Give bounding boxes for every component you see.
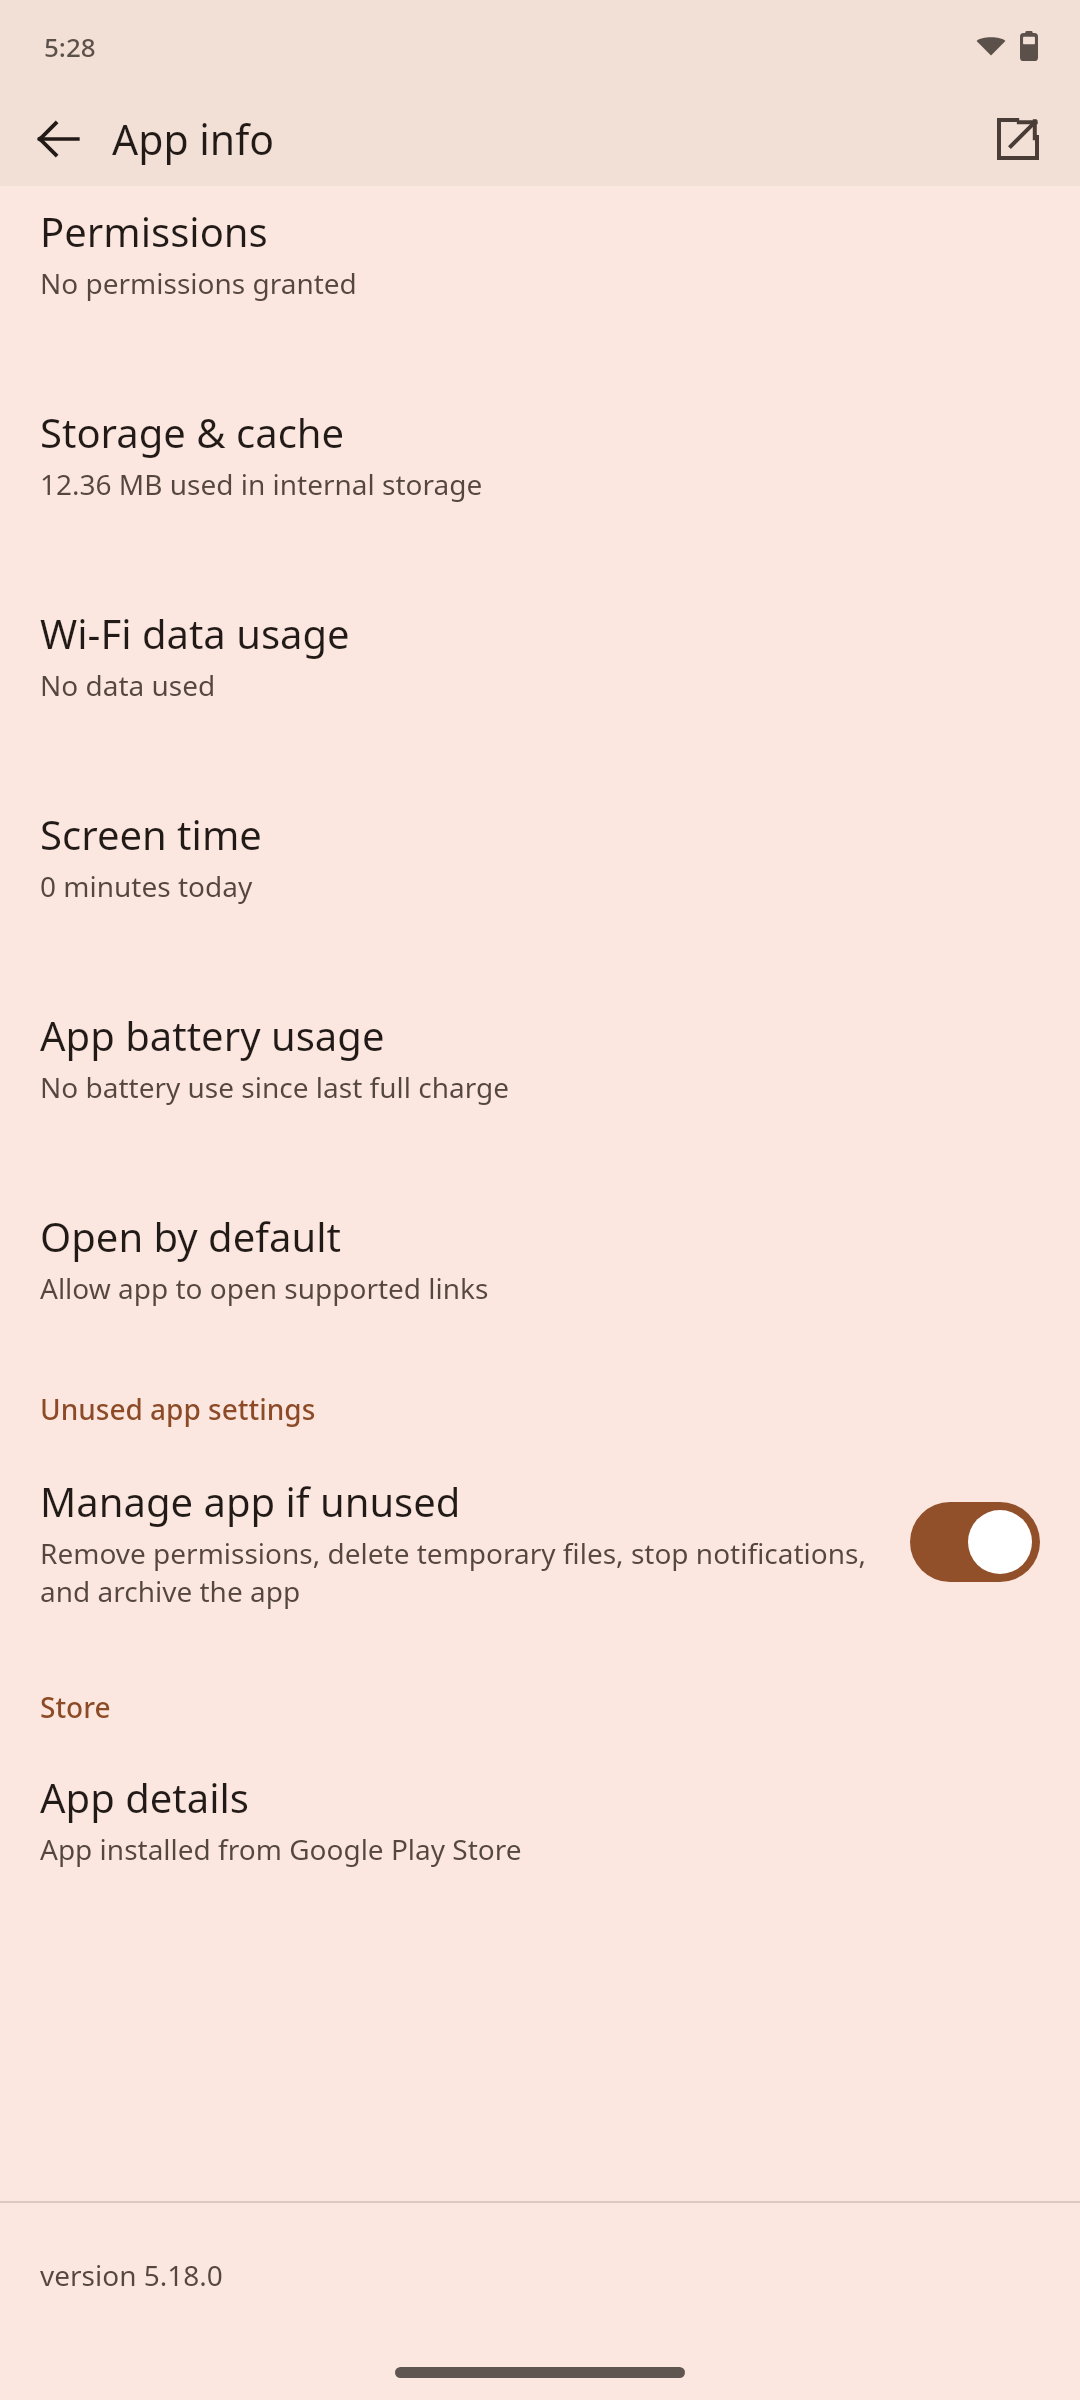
button[interactable]: App battery usage [0,905,1080,1106]
staticText: Remove permissions, delete temporary fil… [40,1534,886,1610]
staticText: No permissions granted [40,264,357,302]
staticText: Manage app if unused [40,1474,461,1528]
button[interactable]: Manage app if unused toggle [910,1502,1040,1582]
button[interactable]: Permissions [0,186,1080,302]
staticText: Unused app settings [40,1390,1080,1428]
staticText: version 5.18.0 [40,2256,223,2294]
staticText: Open by default [40,1209,341,1263]
staticText: Screen time [40,807,262,861]
staticText: No battery use since last full charge [40,1068,509,1106]
button[interactable]: Manage app if unused [0,1428,1080,1610]
staticText: Store [40,1688,1080,1726]
button[interactable]: Open app [976,97,1060,181]
button[interactable]: App details [0,1726,1080,1868]
staticText: Allow app to open supported links [40,1269,489,1307]
button[interactable]: Back [16,97,100,181]
button[interactable]: Storage & cache [0,302,1080,503]
staticText: Wi-Fi data usage [40,606,350,660]
staticText: App battery usage [40,1008,385,1062]
staticText: 5:28 [44,29,96,64]
button[interactable]: Open by default [0,1106,1080,1307]
staticText: Storage & cache [40,405,345,459]
staticText: App info [112,111,275,167]
staticText: App details [40,1770,249,1824]
staticText: 12.36 MB used in internal storage [40,465,483,503]
staticText: App installed from Google Play Store [40,1830,522,1868]
button[interactable]: Screen time [0,704,1080,905]
staticText: 0 minutes today [40,867,253,905]
button[interactable]: Wi-Fi data usage [0,503,1080,704]
staticText: Permissions [40,204,268,258]
staticText: No data used [40,666,216,704]
